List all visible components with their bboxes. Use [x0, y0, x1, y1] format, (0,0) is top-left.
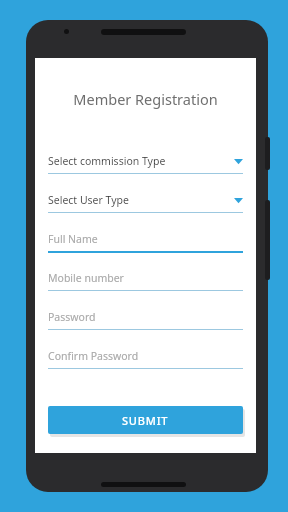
- staticText: Select commission Type: [48, 154, 234, 168]
- staticText: Select User Type: [48, 193, 234, 207]
- staticText: Full Name: [48, 232, 243, 246]
- button[interactable]: Full Name: [48, 232, 243, 253]
- button[interactable]: Select commission Type: [48, 154, 243, 174]
- staticText: Mobile number: [48, 271, 243, 285]
- button[interactable]: Mobile number: [48, 271, 243, 291]
- staticText: SUBMIT: [122, 413, 169, 428]
- staticText: Password: [48, 310, 243, 324]
- other: Open Select User Type dropdown: [234, 197, 243, 204]
- button[interactable]: SUBMIT: [48, 406, 243, 434]
- staticText: Member Registration: [35, 89, 256, 109]
- staticText: Confirm Password: [48, 349, 243, 363]
- other: Open Select commission Type dropdown: [234, 158, 243, 165]
- button[interactable]: Confirm Password: [48, 349, 243, 369]
- button[interactable]: Select User Type: [48, 193, 243, 213]
- button[interactable]: Password: [48, 310, 243, 330]
